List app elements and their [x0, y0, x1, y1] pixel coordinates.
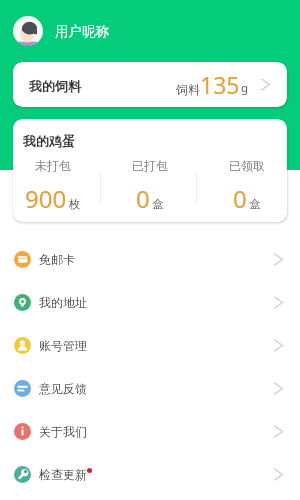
staticText: 我的地址	[39, 295, 87, 310]
staticText: 我的鸡蛋	[23, 133, 75, 149]
button[interactable]: 已打包	[110, 158, 190, 215]
staticText: 900	[25, 182, 67, 215]
button[interactable]: 我的地址	[0, 281, 300, 324]
staticText: 未打包	[35, 158, 71, 173]
button[interactable]: 已领取	[207, 158, 287, 215]
staticText: 0	[136, 182, 150, 215]
button[interactable]: 用户昵称	[0, 0, 300, 62]
button[interactable]: 未打包	[13, 158, 93, 215]
staticText: 0	[233, 182, 247, 215]
staticText: g	[241, 80, 249, 96]
staticText: 盒	[249, 197, 261, 211]
staticText: 用户昵称	[55, 23, 109, 40]
button[interactable]: 意见反馈	[0, 367, 300, 410]
button[interactable]: 我的饲料	[13, 62, 287, 107]
button[interactable]: 免邮卡	[0, 238, 300, 281]
button[interactable]: 检查更新	[0, 453, 300, 496]
staticText: 盒	[152, 197, 164, 211]
staticText: 我的饲料	[29, 78, 81, 94]
staticText: 关于我们	[39, 424, 87, 439]
button[interactable]: 账号管理	[0, 324, 300, 367]
staticText: 免邮卡	[39, 252, 75, 267]
staticText: 135	[200, 69, 240, 100]
staticText: 账号管理	[39, 338, 87, 353]
staticText: 检查更新	[39, 467, 87, 482]
staticText: 已领取	[229, 158, 265, 173]
staticText: 意见反馈	[39, 381, 87, 396]
staticText: 已打包	[132, 158, 168, 173]
button[interactable]: 关于我们	[0, 410, 300, 453]
staticText: 枚	[69, 197, 81, 211]
staticText: 饲料	[176, 82, 200, 97]
